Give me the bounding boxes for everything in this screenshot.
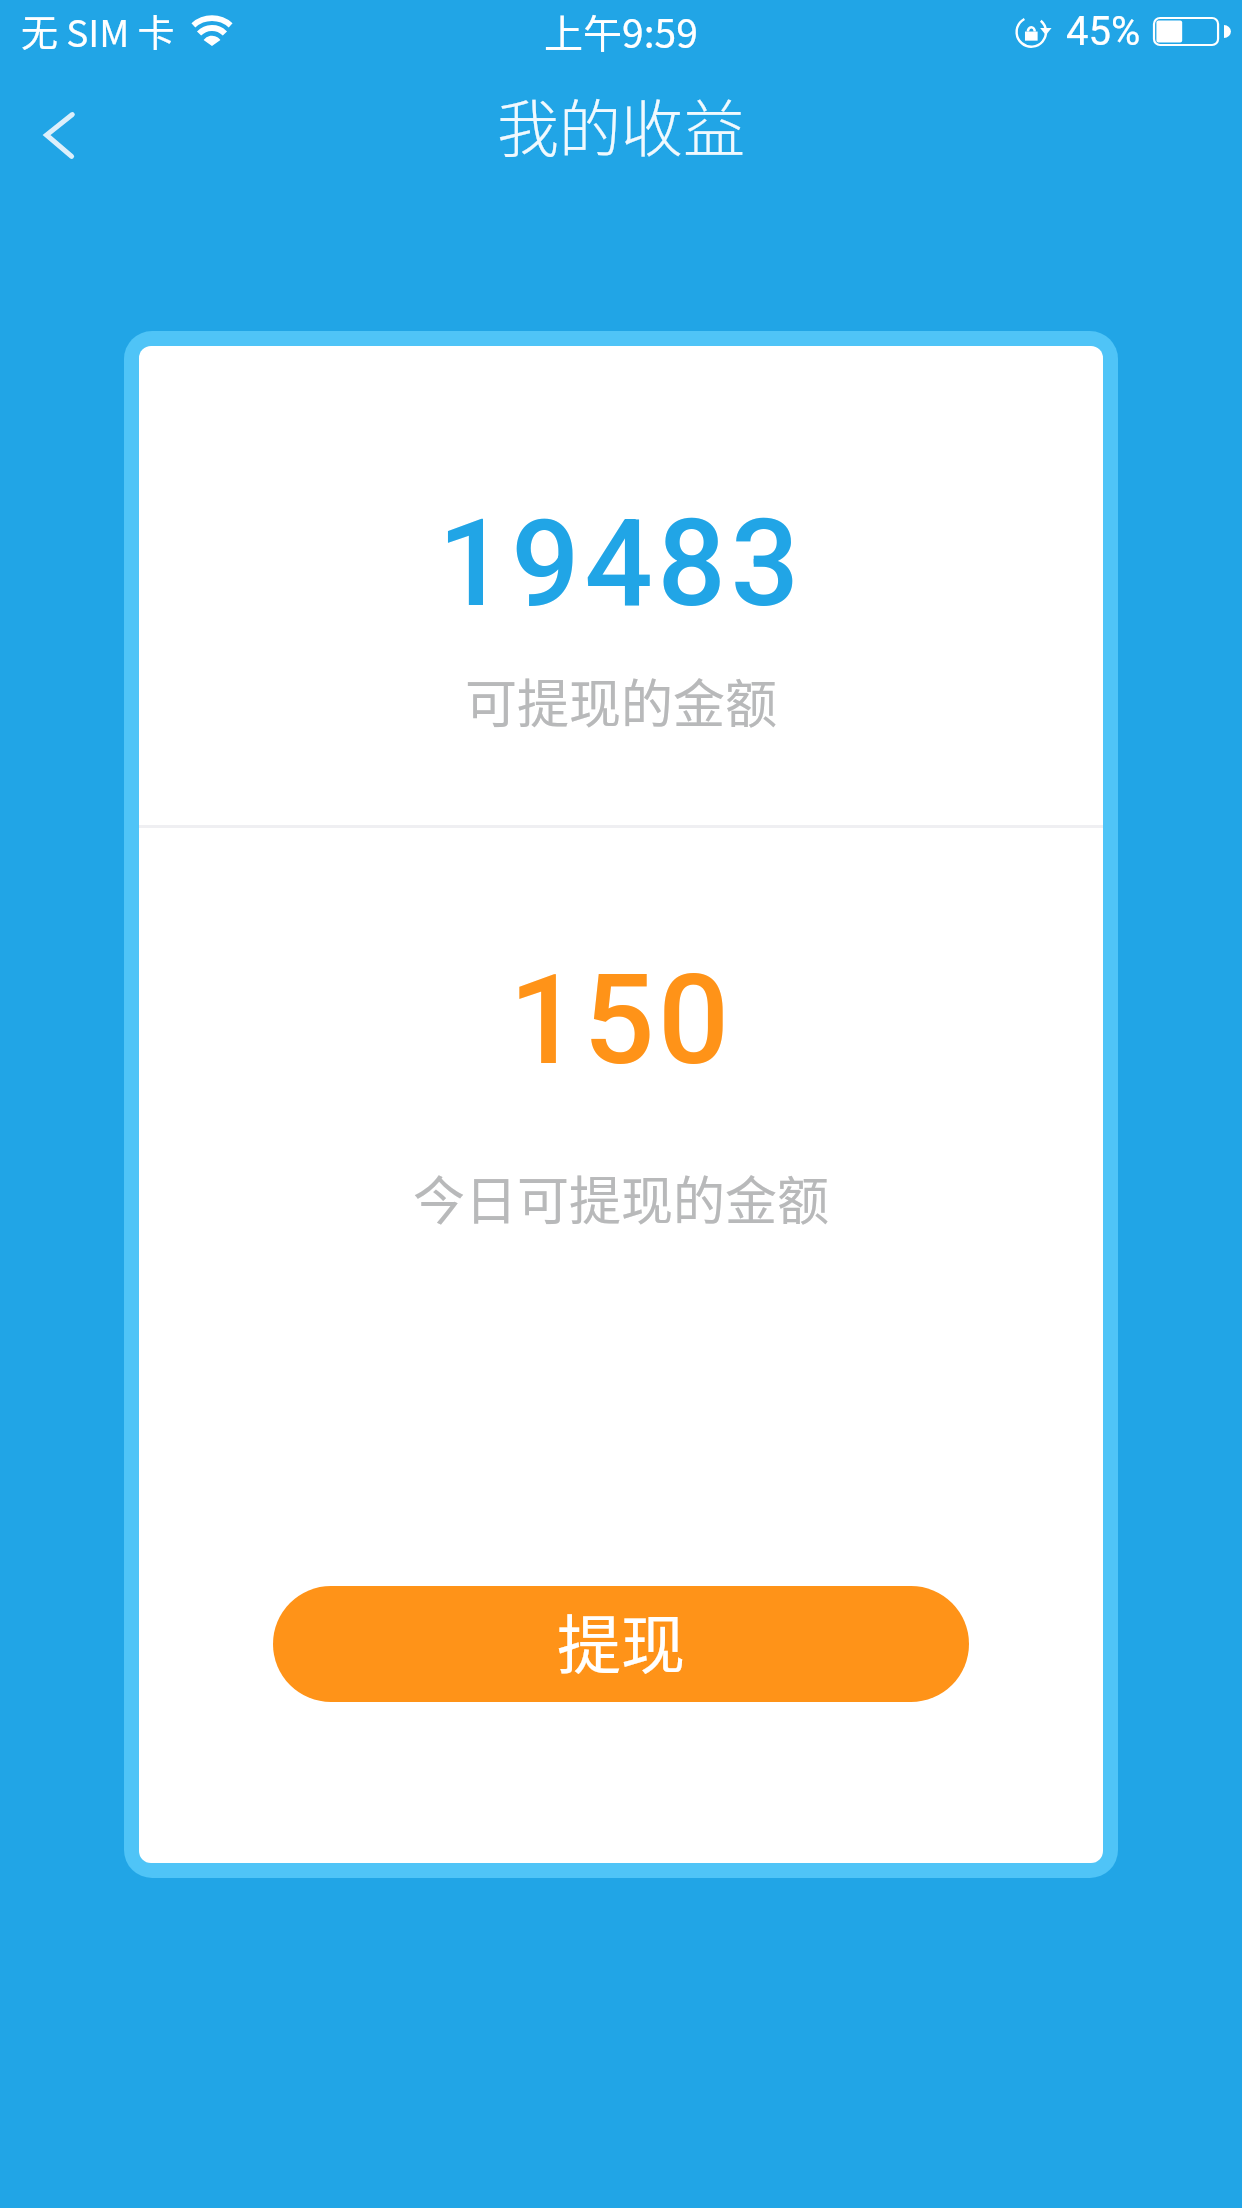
staticText: 我的收益	[497, 80, 746, 170]
button[interactable]: Back	[9, 77, 125, 193]
staticText: 45%	[1066, 8, 1141, 55]
staticText: 提现	[557, 1594, 685, 1687]
staticText: 无 SIM 卡	[21, 4, 175, 58]
staticText: 19483	[438, 494, 805, 635]
staticText: 150	[509, 947, 733, 1093]
staticText: 可提现的金额	[465, 663, 778, 738]
button[interactable]: 提现	[273, 1586, 969, 1702]
staticText: 今日可提现的金额	[413, 1160, 830, 1235]
staticText: 上午9:59	[544, 3, 698, 59]
